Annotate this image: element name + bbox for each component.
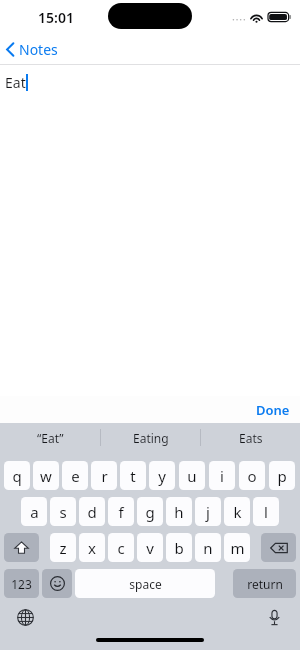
staticText: m [230, 538, 245, 558]
staticText: p [277, 466, 287, 486]
button[interactable]: Notes [0, 38, 64, 61]
button[interactable]: o [239, 461, 265, 490]
staticText: a [30, 502, 39, 522]
staticText: Notes [19, 40, 58, 59]
button[interactable]: l [253, 497, 279, 526]
button[interactable]: g [137, 497, 163, 526]
button[interactable]: v [137, 533, 163, 562]
staticText: v [146, 538, 154, 558]
button[interactable]: Done [246, 398, 300, 422]
button[interactable]: w [33, 461, 59, 490]
staticText: k [233, 502, 242, 522]
button[interactable]: Switch keyboard language [14, 606, 37, 629]
staticText: c [117, 538, 125, 558]
button[interactable]: Backspace [261, 533, 296, 562]
button[interactable]: Eating [101, 423, 200, 452]
button[interactable]: j [195, 497, 221, 526]
staticText: j [206, 502, 210, 522]
button[interactable]: m [224, 533, 250, 562]
staticText: n [203, 538, 213, 558]
staticText: t [130, 466, 136, 486]
staticText: r [101, 466, 108, 486]
staticText: o [247, 466, 257, 486]
staticText: h [174, 502, 184, 522]
staticText: “Eat” [37, 430, 64, 446]
button[interactable]: x [79, 533, 105, 562]
button[interactable]: d [79, 497, 105, 526]
button[interactable]: k [224, 497, 250, 526]
button[interactable]: Emoji [42, 569, 72, 598]
staticText: z [59, 538, 67, 558]
staticText: u [187, 466, 197, 486]
button[interactable]: z [50, 533, 76, 562]
staticText: q [12, 466, 22, 486]
button[interactable]: i [209, 461, 235, 490]
staticText: x [88, 538, 96, 558]
button[interactable]: “Eat” [0, 423, 100, 452]
button[interactable]: q [4, 461, 30, 490]
button[interactable]: t [120, 461, 146, 490]
button[interactable]: 123 [4, 569, 39, 598]
staticText: e [71, 466, 80, 486]
staticText: f [118, 502, 124, 522]
button[interactable]: return [233, 569, 296, 598]
staticText: Done [256, 401, 290, 419]
staticText: 15:01 [38, 8, 74, 27]
staticText: b [174, 538, 184, 558]
button[interactable]: s [50, 497, 76, 526]
staticText: Eat [5, 73, 26, 92]
button[interactable]: a [21, 497, 47, 526]
button[interactable]: Dictate [263, 606, 286, 629]
staticText: Eating [133, 430, 169, 446]
button[interactable]: p [269, 461, 295, 490]
staticText: Eats [239, 430, 263, 446]
button[interactable]: f [108, 497, 134, 526]
staticText: space [129, 576, 162, 592]
staticText: 123 [11, 576, 32, 592]
staticText: y [158, 466, 166, 486]
staticText: i [220, 466, 224, 486]
button[interactable]: n [195, 533, 221, 562]
button[interactable]: e [62, 461, 88, 490]
staticText: l [264, 502, 268, 522]
button[interactable]: Eats [201, 423, 300, 452]
button[interactable]: Shift [4, 533, 39, 562]
button[interactable]: h [166, 497, 192, 526]
button[interactable]: space [75, 569, 215, 598]
button[interactable]: b [166, 533, 192, 562]
button[interactable]: c [108, 533, 134, 562]
staticText: return [247, 576, 283, 592]
button[interactable]: y [149, 461, 175, 490]
button[interactable]: u [179, 461, 205, 490]
button[interactable]: r [91, 461, 117, 490]
staticText: s [59, 502, 67, 522]
staticText: g [145, 502, 155, 522]
staticText: d [87, 502, 97, 522]
staticText: w [40, 466, 52, 486]
